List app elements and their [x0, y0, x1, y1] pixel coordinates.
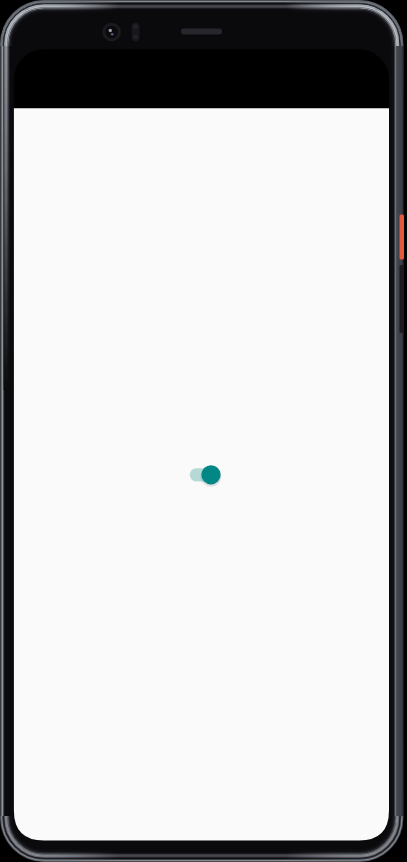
button[interactable]: Toggle switch, on: [187, 451, 235, 499]
